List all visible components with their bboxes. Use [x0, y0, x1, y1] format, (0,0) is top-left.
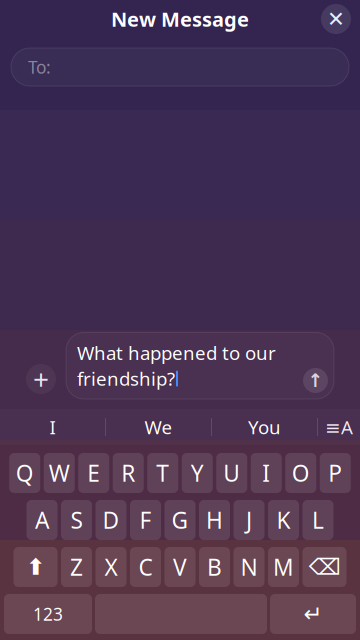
staticText: Z: [70, 552, 83, 582]
button[interactable]: P: [320, 453, 351, 493]
staticText: G: [171, 505, 188, 535]
staticText: +: [33, 360, 49, 398]
staticText: U: [223, 458, 240, 488]
staticText: Y: [191, 458, 204, 488]
button[interactable]: S: [61, 500, 92, 540]
staticText: ⌫: [308, 554, 340, 580]
staticText: C: [138, 552, 152, 582]
staticText: K: [276, 505, 290, 535]
staticText: ↑: [307, 370, 323, 391]
button[interactable]: D: [95, 500, 126, 540]
button[interactable]: You: [212, 409, 317, 445]
button[interactable]: U: [216, 453, 247, 493]
staticText: R: [121, 458, 135, 488]
button[interactable]: W: [44, 453, 75, 493]
staticText: J: [246, 505, 252, 535]
button[interactable]: V: [164, 547, 195, 587]
button[interactable]: Send: [300, 365, 331, 396]
button[interactable]: Close: [317, 0, 355, 38]
button[interactable]: B: [199, 547, 230, 587]
staticText: S: [70, 505, 82, 535]
staticText: X: [104, 552, 117, 582]
button[interactable]: Add attachment: [24, 359, 58, 399]
button[interactable]: Z: [61, 547, 92, 587]
button[interactable]: We: [106, 409, 211, 445]
staticText: ✕: [327, 7, 345, 31]
staticText: D: [102, 505, 119, 535]
staticText: I: [262, 458, 270, 488]
button[interactable]: K: [268, 500, 299, 540]
button[interactable]: F: [130, 500, 161, 540]
button[interactable]: Delete: [302, 547, 346, 587]
button[interactable]: 123: [4, 594, 92, 634]
staticText: N: [240, 552, 257, 582]
button[interactable]: G: [164, 500, 195, 540]
button[interactable]: R: [113, 453, 144, 493]
staticText: F: [139, 505, 151, 535]
staticText: ↵: [303, 601, 322, 627]
staticText: We: [144, 415, 172, 439]
button[interactable]: J: [233, 500, 264, 540]
button[interactable]: L: [302, 500, 333, 540]
staticText: friendship?: [77, 366, 175, 391]
staticText: W: [49, 458, 70, 488]
staticText: New Message: [111, 6, 249, 32]
staticText: What happened to our: [77, 340, 276, 365]
staticText: I: [49, 415, 55, 439]
button[interactable]: Text formatting: [318, 409, 360, 445]
staticText: ≡A: [325, 415, 353, 439]
button[interactable]: I: [0, 409, 105, 445]
button[interactable]: N: [233, 547, 264, 587]
staticText: B: [207, 552, 222, 582]
button[interactable]: X: [95, 547, 126, 587]
staticText: O: [292, 458, 310, 488]
button[interactable]: Shift: [13, 547, 57, 587]
button[interactable]: To:: [11, 48, 349, 86]
staticText: A: [35, 505, 49, 535]
staticText: 123: [33, 602, 63, 625]
button[interactable]: I: [251, 453, 282, 493]
staticText: H: [206, 505, 223, 535]
button[interactable]: C: [130, 547, 161, 587]
staticText: ⬆: [26, 554, 45, 580]
button[interactable]: Return: [270, 594, 356, 634]
button[interactable]: T: [147, 453, 178, 493]
staticText: E: [87, 458, 100, 488]
staticText: You: [248, 415, 281, 439]
button[interactable]: Q: [9, 453, 40, 493]
staticText: L: [312, 505, 324, 535]
button[interactable]: M: [268, 547, 299, 587]
button[interactable]: A: [26, 500, 57, 540]
button[interactable]: E: [78, 453, 109, 493]
button[interactable]: Y: [182, 453, 213, 493]
button[interactable]: H: [199, 500, 230, 540]
staticText: M: [273, 552, 294, 582]
staticText: P: [328, 458, 342, 488]
staticText: T: [156, 458, 169, 488]
staticText: Q: [16, 458, 34, 488]
button[interactable]: O: [285, 453, 316, 493]
staticText: To:: [28, 55, 51, 78]
staticText: V: [173, 552, 187, 582]
